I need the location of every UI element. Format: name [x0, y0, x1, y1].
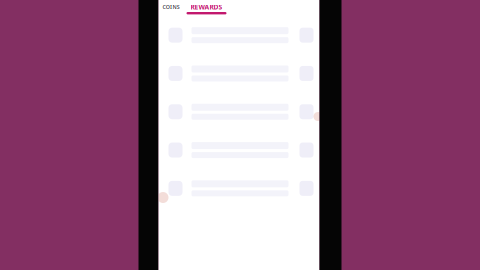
button[interactable] [158, 93, 319, 131]
button[interactable]: REWARDS [190, 0, 230, 14]
staticText: REWARDS [190, 3, 222, 11]
button[interactable] [158, 169, 319, 207]
button[interactable] [158, 16, 319, 54]
button[interactable]: COINS [162, 0, 180, 11]
staticText: COINS [162, 3, 180, 11]
button[interactable] [158, 131, 319, 169]
button[interactable] [158, 54, 319, 93]
